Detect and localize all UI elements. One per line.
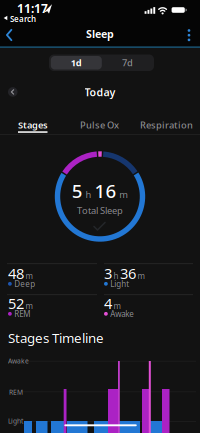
- button[interactable]: Previous day: [8, 87, 17, 97]
- button[interactable]: Stages: [0, 116, 66, 134]
- staticText: m: [137, 270, 144, 281]
- staticText: Total Sleep: [77, 204, 123, 217]
- staticText: h: [113, 270, 118, 281]
- button[interactable]: 1d: [51, 56, 102, 69]
- staticText: Awake: [8, 356, 29, 365]
- staticText: Stages: [18, 119, 48, 131]
- staticText: Deep: [14, 278, 35, 289]
- staticText: m: [113, 300, 120, 311]
- staticText: Light: [8, 416, 23, 425]
- staticText: m: [119, 188, 128, 201]
- staticText: 48: [8, 263, 24, 283]
- button[interactable]: 7d: [102, 56, 153, 69]
- staticText: Awake: [110, 308, 134, 319]
- staticText: Today: [84, 85, 115, 99]
- button[interactable]: More options: [182, 25, 196, 45]
- staticText: 52: [8, 293, 24, 313]
- staticText: 11:17: [17, 0, 48, 16]
- staticText: 4: [104, 293, 112, 313]
- button[interactable]: Pulse Ox: [66, 116, 133, 134]
- staticText: 5: [72, 178, 83, 203]
- staticText: Search: [10, 14, 36, 24]
- button[interactable]: Respiration: [133, 116, 200, 134]
- staticText: REM: [9, 388, 23, 397]
- staticText: Sleep: [86, 27, 114, 41]
- staticText: 1d: [71, 57, 82, 69]
- staticText: 3: [104, 263, 112, 283]
- staticText: 16: [94, 178, 116, 203]
- button[interactable]: Back: [2, 26, 18, 43]
- staticText: 36: [120, 263, 136, 283]
- staticText: Stages Timeline: [8, 329, 104, 347]
- staticText: m: [25, 270, 32, 281]
- staticText: 7d: [122, 57, 133, 69]
- staticText: Respiration: [140, 119, 193, 131]
- staticText: Light: [110, 278, 129, 289]
- staticText: m: [25, 300, 32, 311]
- staticText: Pulse Ox: [80, 119, 119, 131]
- staticText: h: [86, 188, 92, 201]
- staticText: REM: [14, 308, 30, 319]
